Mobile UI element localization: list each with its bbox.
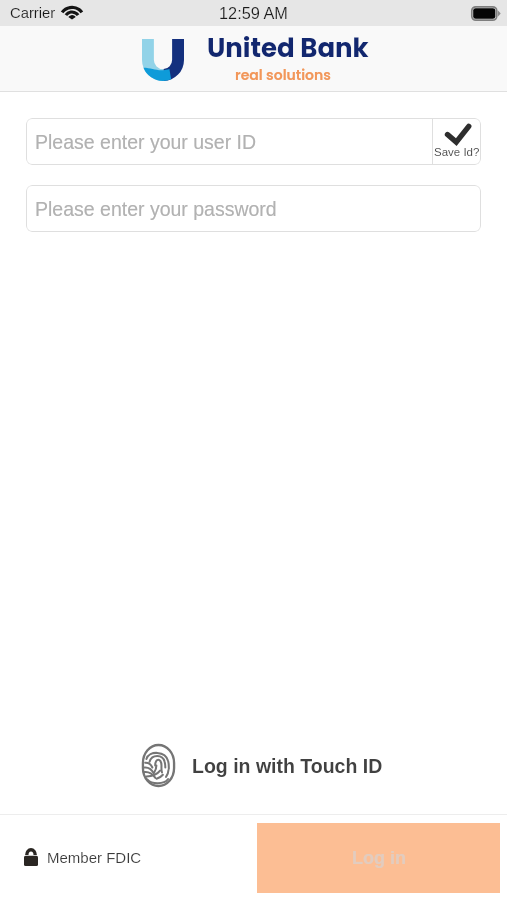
staticText: United Bank (207, 30, 369, 66)
staticText: Please enter your user ID (35, 131, 257, 153)
button[interactable]: Please enter your password (26, 185, 481, 232)
staticText: 12:59 AM (219, 4, 288, 22)
staticText: Member FDIC (47, 849, 142, 866)
staticText: Please enter your password (35, 198, 277, 220)
staticText: Log in with Touch ID (192, 755, 383, 777)
button[interactable]: Log in with Touch ID (0, 743, 507, 788)
staticText: real solutions (235, 65, 331, 85)
button[interactable]: Member FDIC (24, 849, 142, 866)
staticText: Carrier (10, 5, 56, 22)
button[interactable]: Save Id (433, 118, 481, 165)
button[interactable]: Log in (257, 823, 500, 893)
button[interactable]: Please enter your user ID (26, 118, 432, 165)
staticText: Save Id? (434, 146, 480, 159)
staticText: Log in (352, 848, 406, 868)
